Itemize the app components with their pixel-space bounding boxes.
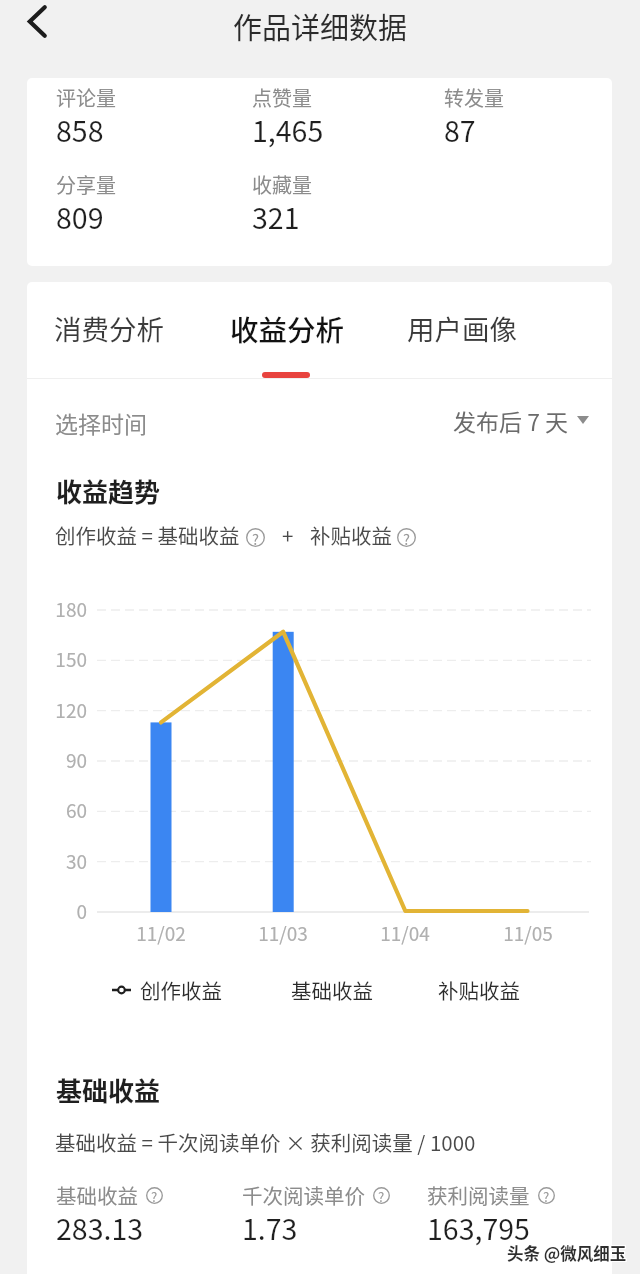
staticText: 0 <box>29 897 87 925</box>
staticText: 30 <box>29 847 87 875</box>
staticText: 11/04 <box>360 919 450 947</box>
staticText: 获利阅读量 <box>427 1180 530 1210</box>
staticText: 60 <box>29 796 87 824</box>
button[interactable]: 收益分析 <box>214 282 364 378</box>
staticText: 用户画像 <box>407 308 517 348</box>
staticText: 评论量 <box>56 83 116 112</box>
staticText: 头条 @微风细玉 <box>506 1241 626 1265</box>
staticText: 选择时间 <box>55 406 147 439</box>
staticText: 补贴收益 <box>310 520 392 550</box>
staticText: 809 <box>56 196 104 237</box>
staticText: 150 <box>29 645 87 673</box>
staticText: 分享量 <box>56 170 116 199</box>
staticText: 创作收益 = 基础收益 <box>55 520 240 550</box>
staticText: 作品详细数据 <box>0 5 640 47</box>
button[interactable]: 发布后 7 天 <box>431 402 589 438</box>
staticText: 基础收益 <box>56 1180 138 1210</box>
staticText: 千次阅读单价 <box>242 1180 365 1210</box>
staticText: 1,465 <box>252 109 324 150</box>
staticText: 283.13 <box>56 1207 144 1248</box>
staticText: 11/02 <box>116 919 206 947</box>
button[interactable]: 创作收益 <box>112 975 222 1005</box>
button[interactable]: 用户画像 <box>391 282 537 378</box>
staticText: 11/05 <box>483 919 573 947</box>
staticText: 90 <box>29 746 87 774</box>
staticText: ? <box>403 528 411 547</box>
staticText: 消费分析 <box>54 308 164 348</box>
staticText: 1.73 <box>242 1207 298 1248</box>
staticText: + <box>282 520 294 550</box>
staticText: ? <box>252 528 260 547</box>
staticText: 发布后 7 天 <box>453 404 569 437</box>
staticText: ? <box>151 1187 158 1204</box>
staticText: 163,795 <box>427 1207 530 1248</box>
staticText: 转发量 <box>444 83 504 112</box>
staticText: 头条 @微风细玉 <box>508 1240 628 1264</box>
staticText: 87 <box>444 109 476 150</box>
staticText: ? <box>378 1187 385 1204</box>
staticText: 基础收益 = 千次阅读单价 × 获利阅读量 / 1000 <box>55 1127 476 1157</box>
staticText: 头条 @微风细玉 <box>507 1241 627 1265</box>
button[interactable]: 基础收益 <box>291 975 373 1005</box>
staticText: 120 <box>29 696 87 724</box>
staticText: 收益趋势 <box>56 472 161 510</box>
staticText: 头条 @微风细玉 <box>507 1240 627 1264</box>
staticText: 收藏量 <box>252 170 312 199</box>
staticText: 基础收益 <box>291 975 373 1005</box>
staticText: 头条 @微风细玉 <box>507 1242 627 1266</box>
staticText: 11/03 <box>238 919 328 947</box>
staticText: 321 <box>252 196 300 237</box>
staticText: 858 <box>56 109 104 150</box>
staticText: 头条 @微风细玉 <box>508 1241 628 1265</box>
staticText: 180 <box>29 595 87 623</box>
staticText: ? <box>543 1187 550 1204</box>
staticText: 补贴收益 <box>438 975 520 1005</box>
staticText: 头条 @微风细玉 <box>506 1242 626 1266</box>
staticText: 基础收益 <box>56 1071 161 1109</box>
staticText: 收益分析 <box>230 308 345 349</box>
staticText: 头条 @微风细玉 <box>506 1240 626 1264</box>
staticText: 头条 @微风细玉 <box>508 1242 628 1266</box>
staticText: 创作收益 <box>140 975 222 1005</box>
staticText: 点赞量 <box>252 83 312 112</box>
button[interactable]: 消费分析 <box>38 282 184 378</box>
button[interactable]: Back <box>8 0 68 48</box>
button[interactable]: 补贴收益 <box>438 975 520 1005</box>
